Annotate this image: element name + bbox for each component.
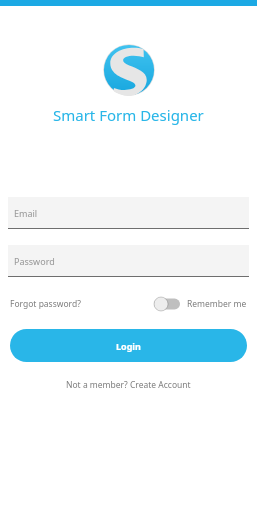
staticText: Forgot password? (10, 298, 81, 310)
button[interactable]: Remember me (154, 297, 180, 311)
button[interactable]: Forgot password? (10, 294, 81, 314)
button[interactable]: Email (8, 197, 249, 229)
staticText: Email (14, 207, 38, 219)
staticText: Login (116, 340, 141, 352)
other: Smart Form Designer logo (103, 44, 155, 96)
button[interactable]: Password (8, 245, 249, 277)
button[interactable]: Remember me (154, 295, 247, 313)
staticText: Not a member? Create Account (66, 379, 191, 391)
staticText: Remember me (187, 298, 247, 310)
button[interactable]: Not a member? Create Account (60, 376, 197, 394)
staticText: Password (14, 255, 55, 267)
button[interactable]: Login (10, 329, 247, 362)
staticText: Smart Form Designer (53, 105, 204, 125)
